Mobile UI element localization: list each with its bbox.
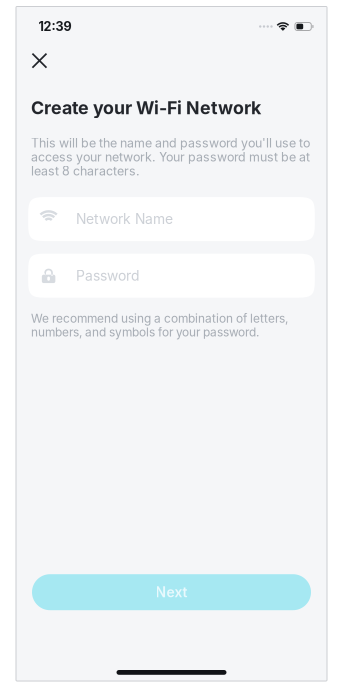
staticText: Next [155, 584, 187, 601]
staticText: Password [76, 267, 139, 284]
staticText: We recommend using a combination of lett… [31, 311, 288, 339]
button[interactable]: Next [32, 574, 311, 610]
staticText: This will be the name and password you'l… [31, 136, 310, 179]
staticText: 12:39 [38, 19, 71, 34]
staticText: Create your Wi-Fi Network [31, 97, 261, 118]
button[interactable]: Password [28, 254, 315, 298]
staticText: Network Name [76, 211, 173, 227]
button[interactable]: Close [16, 48, 60, 73]
button[interactable]: Network Name [28, 197, 315, 241]
